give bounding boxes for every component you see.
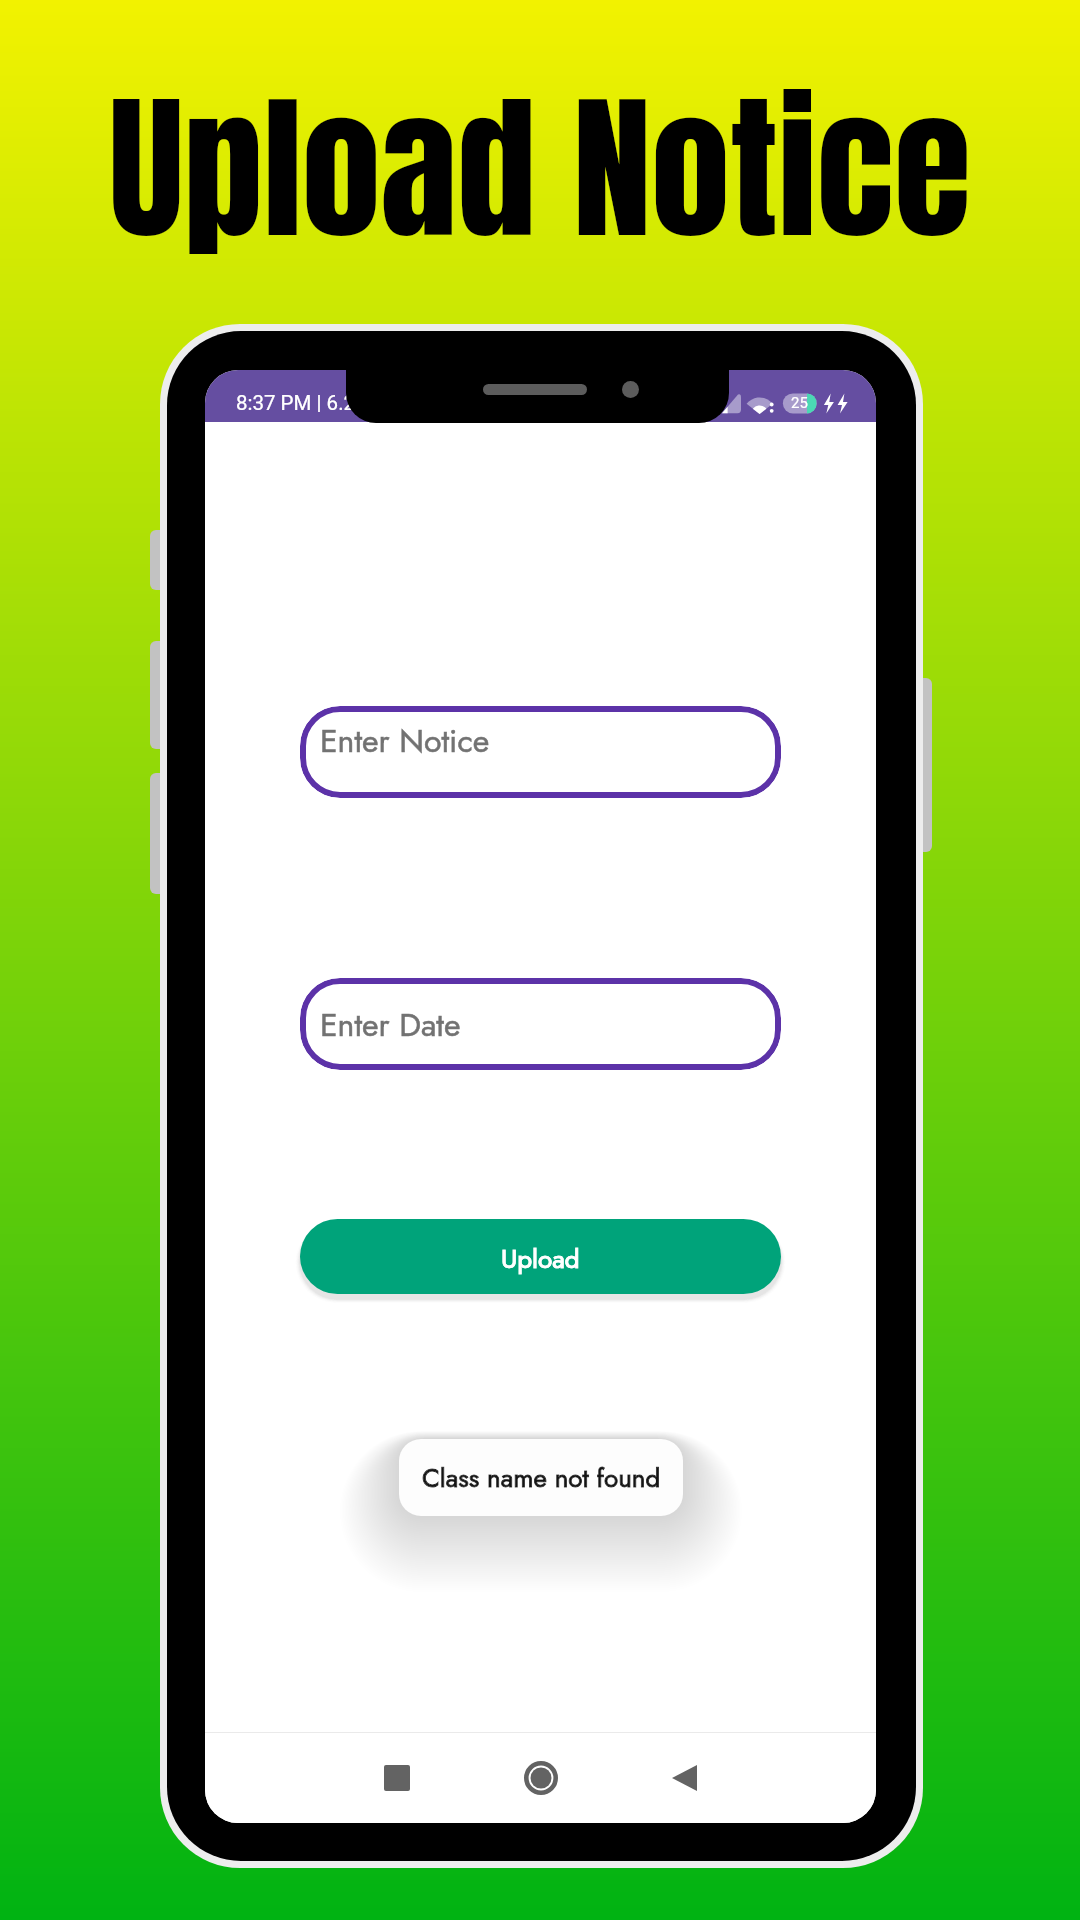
button[interactable]: Enter Notice — [300, 706, 781, 798]
button[interactable]: Back — [642, 1736, 726, 1820]
button[interactable]: Upload — [300, 1219, 781, 1294]
staticText: Upload — [501, 1240, 580, 1278]
staticText: Class name not found — [422, 1459, 661, 1497]
button[interactable]: Enter Date — [300, 978, 781, 1070]
staticText: Enter Notice — [320, 718, 490, 764]
staticText: Upload Notice — [0, 49, 1080, 287]
button[interactable]: Recent apps — [355, 1736, 439, 1820]
staticText: Enter Date — [320, 1002, 461, 1048]
staticText: Enter Notice — [320, 718, 490, 764]
staticText: 8:37 PM | 6.2 — [236, 391, 356, 415]
staticText: Upload — [501, 1240, 580, 1278]
staticText: Enter Date — [320, 1002, 461, 1048]
button[interactable]: Home — [499, 1736, 583, 1820]
staticText: Class name not found — [422, 1459, 661, 1497]
other: Signal, Wi-Fi and battery status — [715, 388, 855, 414]
staticText: 25 — [791, 394, 808, 412]
